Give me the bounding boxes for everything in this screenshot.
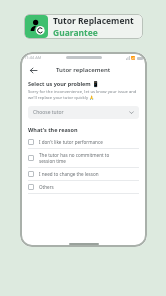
staticText: Tutor replacement [56,66,111,74]
staticText: I need to change the lesson [39,171,99,177]
button[interactable]: Tutor replacement guarantee [24,14,143,39]
button[interactable]: I need to change the lesson [20,168,147,180]
staticText: 📶 [131,56,136,60]
staticText: Tutor Replacement [53,15,134,27]
staticText: Sorry for the inconvenience, let us know… [28,89,139,101]
other: Tutor replacement guarantee [25,15,48,38]
staticText: 11:44 AM [24,55,42,60]
button[interactable]: I don't like tutor performance [20,136,147,148]
staticText: Select us your problem 📱 [28,80,100,87]
button[interactable]: The tutor has no commitment to session t… [20,149,147,167]
staticText: Guarantee [53,27,98,39]
staticText: Others [39,184,54,190]
button[interactable]: Choose tutor [28,106,139,119]
staticText: I don't like tutor performance [39,139,103,145]
button[interactable]: Back [28,65,38,75]
staticText: The tutor has no commitment to session t… [39,152,110,164]
staticText: Choose tutor [33,109,64,116]
button[interactable]: Others [20,181,147,193]
staticText: What's the reason [28,126,78,133]
